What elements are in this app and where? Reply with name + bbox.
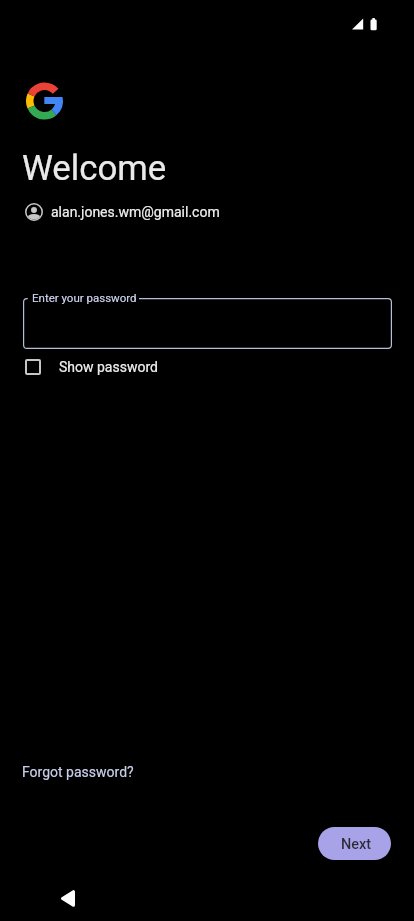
button[interactable]: Enter your password xyxy=(0,291,414,355)
staticText: Forgot password? xyxy=(22,764,134,780)
staticText: Welcome xyxy=(22,148,167,189)
staticText: Enter your password xyxy=(32,291,137,304)
button[interactable]: Back xyxy=(47,878,87,918)
staticText: alan.jones.wm@gmail.com xyxy=(51,204,220,220)
staticText: Show password xyxy=(59,359,158,375)
staticText: Next xyxy=(341,836,372,853)
button[interactable]: Next xyxy=(318,827,391,860)
button[interactable]: Show password xyxy=(20,355,168,379)
button[interactable]: Forgot password? xyxy=(14,758,142,786)
